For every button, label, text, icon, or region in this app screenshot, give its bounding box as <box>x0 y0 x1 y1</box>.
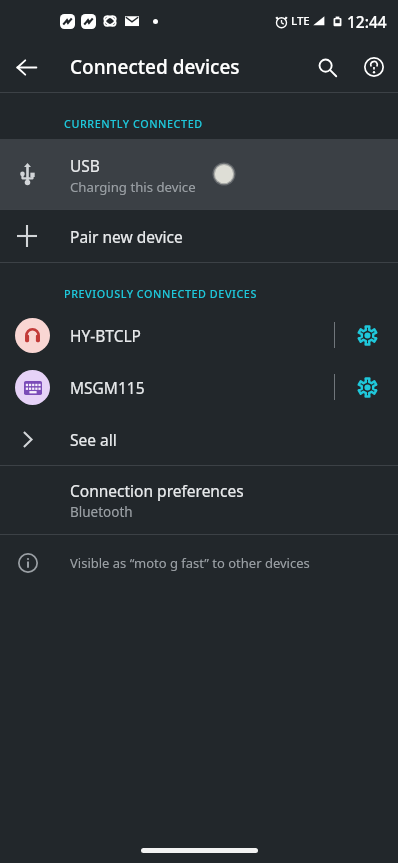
button[interactable]: Device settings <box>349 369 385 405</box>
button[interactable]: Search <box>304 44 350 90</box>
button[interactable]: Pair new device <box>0 210 398 262</box>
staticText: LTE <box>291 13 310 29</box>
button[interactable]: See all <box>0 413 398 465</box>
button[interactable]: USB <box>0 139 398 209</box>
staticText: PREVIOUSLY CONNECTED DEVICES <box>64 286 257 301</box>
staticText: USB <box>70 155 100 176</box>
button[interactable]: USB options <box>212 162 236 186</box>
staticText: CURRENTLY CONNECTED <box>64 116 203 131</box>
staticText: MSGM115 <box>70 377 334 398</box>
staticText: See all <box>70 429 117 450</box>
staticText: 12:44 <box>347 11 387 32</box>
staticText: Visible as “moto g fast” to other device… <box>70 554 310 572</box>
button[interactable]: MSGM115 <box>0 361 398 413</box>
staticText: Charging this device <box>70 178 196 196</box>
staticText: Connection preferences <box>70 480 244 501</box>
staticText: Connected devices <box>70 54 304 80</box>
staticText: HY-BTCLP <box>70 325 334 346</box>
button[interactable]: Back <box>0 42 52 92</box>
button[interactable]: Connection preferences <box>0 466 398 534</box>
button[interactable]: Device settings <box>349 317 385 353</box>
button[interactable]: Help <box>351 44 397 90</box>
button[interactable]: HY-BTCLP <box>0 309 398 361</box>
staticText: Bluetooth <box>70 503 133 521</box>
staticText: Pair new device <box>70 226 183 247</box>
